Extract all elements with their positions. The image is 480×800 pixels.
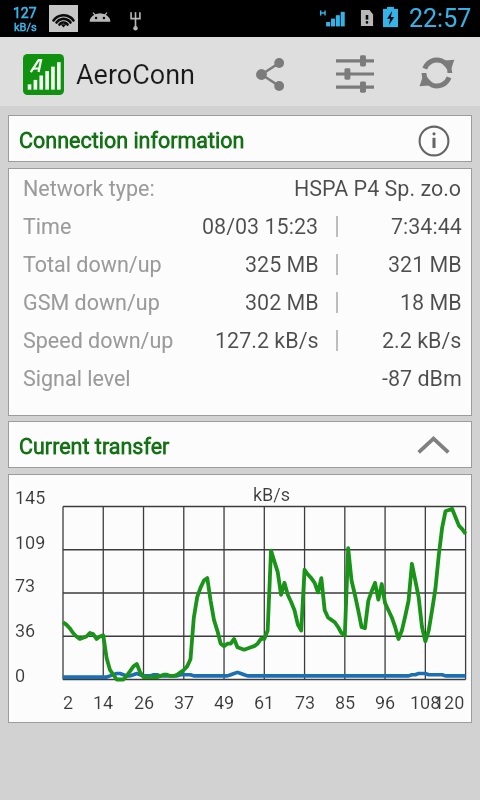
staticText: 2.2 kB/s — [382, 328, 462, 353]
staticText: Current transfer — [19, 434, 170, 459]
staticText: 145 — [15, 487, 46, 508]
staticText: 14 — [93, 692, 114, 713]
staticText: 73 — [15, 575, 36, 596]
staticText: 109 — [15, 532, 46, 553]
button[interactable]: Share — [237, 46, 305, 102]
staticText: AeroConn — [76, 59, 196, 91]
staticText: 0 — [15, 665, 26, 686]
staticText: 127.2 kB/s — [215, 328, 319, 353]
staticText: 7:34:44 — [391, 214, 462, 239]
staticText: 96 — [375, 692, 396, 713]
button[interactable]: Current transfer — [9, 422, 471, 467]
staticText: 22:57 — [409, 4, 472, 33]
staticText: 2 — [63, 692, 74, 713]
staticText: GSM down/up — [23, 290, 160, 315]
staticText: 26 — [134, 692, 155, 713]
staticText: Network type: — [23, 176, 155, 201]
staticText: 325 MB — [245, 252, 319, 277]
staticText: 18 MB — [400, 290, 462, 315]
staticText: Time — [23, 214, 72, 239]
button[interactable]: Settings — [325, 45, 384, 102]
staticText: Speed down/up — [23, 328, 174, 353]
button[interactable]: Refresh — [406, 44, 470, 101]
staticText: 85 — [335, 692, 356, 713]
staticText: kB/s — [253, 484, 291, 505]
staticText: 302 MB — [245, 290, 319, 315]
staticText: 36 — [15, 620, 36, 641]
staticText: 108 — [410, 692, 441, 713]
staticText: kB/s — [14, 21, 37, 34]
staticText: 37 — [174, 692, 195, 713]
staticText: Connection information — [19, 128, 245, 153]
staticText: 73 — [295, 692, 316, 713]
staticText: 61 — [254, 692, 275, 713]
button[interactable]: Connection information — [9, 116, 471, 161]
staticText: 127 — [13, 5, 37, 21]
staticText: 49 — [214, 692, 235, 713]
staticText: 120 — [434, 692, 465, 713]
staticText: HSPA P4 Sp. zo.o — [294, 176, 462, 201]
staticText: -87 dBm — [382, 366, 462, 391]
staticText: Total down/up — [23, 252, 162, 277]
staticText: 321 MB — [388, 252, 462, 277]
staticText: 08/03 15:23 — [202, 214, 319, 239]
staticText: Signal level — [23, 366, 131, 391]
